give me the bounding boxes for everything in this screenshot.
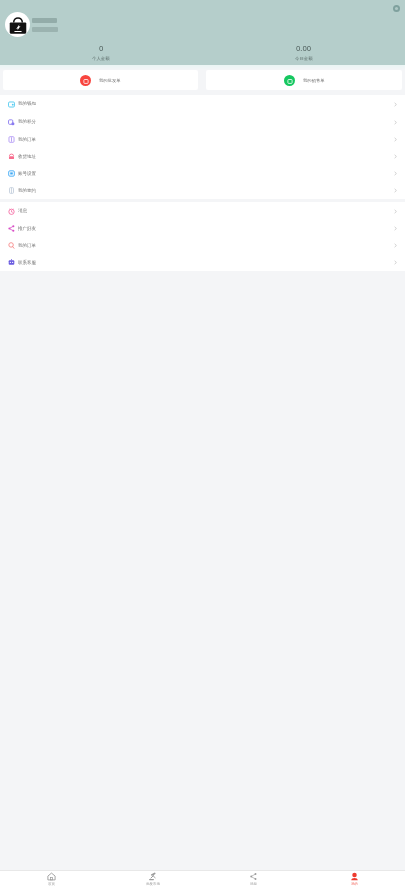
button[interactable]: 我的订单 [0, 131, 405, 148]
staticText: 我的签约 [18, 188, 36, 194]
button[interactable]: 推广好友 [0, 220, 405, 237]
staticText: 我的钱包 [18, 101, 36, 107]
staticText: 我的订单 [18, 243, 36, 249]
button[interactable]: 我的 [304, 872, 405, 887]
staticText: 我的积分 [18, 119, 36, 125]
button[interactable]: 我的订单 [0, 237, 405, 254]
staticText: 个人金额 [92, 56, 110, 62]
button[interactable]: 我的销售单 [206, 70, 402, 90]
staticText: 今日金额 [295, 56, 313, 62]
button[interactable]: 消息 [203, 872, 304, 887]
button[interactable]: 收货地址 [0, 148, 405, 165]
button[interactable]: 我的批发单 [3, 70, 198, 90]
staticText: 联系客服 [18, 260, 36, 266]
button[interactable]: Settings [393, 5, 400, 12]
staticText: 0.00 [296, 43, 312, 53]
staticText: 我的批发单 [99, 78, 121, 83]
staticText: 推广好友 [18, 226, 36, 232]
button[interactable]: 批发市场 [102, 872, 203, 887]
staticText: 首页 [48, 882, 55, 886]
button[interactable]: 我的钱包 [0, 95, 405, 113]
button[interactable]: 我的签约 [0, 182, 405, 199]
button[interactable]: 账号设置 [0, 165, 405, 182]
staticText: 消息 [250, 882, 257, 886]
staticText: 账号设置 [18, 171, 36, 177]
button[interactable]: 首页 [0, 872, 102, 887]
staticText: 收货地址 [18, 154, 36, 160]
staticText: 批发市场 [146, 882, 160, 886]
staticText: 我的销售单 [303, 78, 325, 83]
button[interactable]: 消息 [0, 202, 405, 220]
button[interactable]: 联系客服 [0, 254, 405, 271]
staticText: 0 [99, 43, 104, 53]
staticText: 我的 [351, 882, 358, 886]
staticText: 我的订单 [18, 137, 36, 143]
button[interactable]: 我的积分 [0, 113, 405, 131]
staticText: 消息 [18, 208, 27, 214]
